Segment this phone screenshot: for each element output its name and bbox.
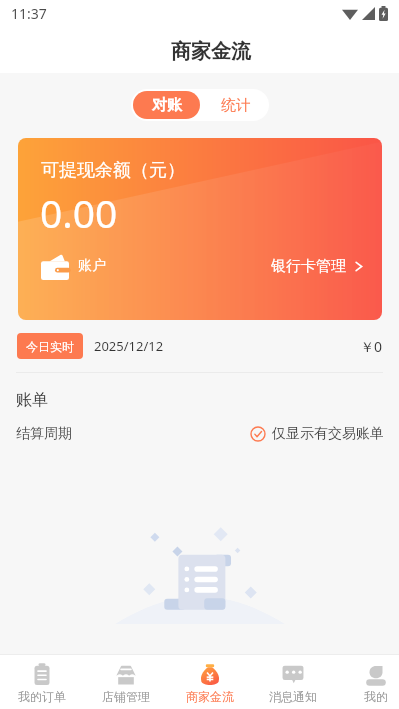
- staticText: 消息通知: [269, 689, 317, 704]
- staticText: 结算周期: [16, 425, 72, 443]
- staticText: 店铺管理: [102, 689, 150, 704]
- button[interactable]: Profile: [334, 655, 399, 709]
- button[interactable]: 统计: [202, 89, 269, 121]
- staticText: 0.00: [40, 186, 118, 239]
- staticText: 我的订单: [18, 689, 66, 704]
- staticText: 我的: [364, 689, 388, 704]
- staticText: 可提现余额（元）: [41, 159, 185, 182]
- staticText: 商家金流: [171, 39, 251, 64]
- staticText: 对账: [152, 96, 182, 115]
- button[interactable]: 银行卡管理: [271, 257, 365, 276]
- button[interactable]: Shop management: [84, 655, 168, 709]
- staticText: 商家金流: [186, 689, 234, 704]
- button[interactable]: 仅显示有交易账单: [250, 425, 384, 443]
- staticText: 11:37: [11, 4, 47, 23]
- staticText: 账单: [16, 390, 48, 410]
- button[interactable]: 对账: [133, 91, 200, 119]
- staticText: 2025/12/12: [94, 337, 164, 355]
- staticText: 银行卡管理: [271, 257, 346, 276]
- button[interactable]: My orders: [0, 655, 84, 709]
- staticText: ￥0: [360, 337, 383, 356]
- button[interactable]: 可提现余额（元）: [18, 138, 382, 320]
- staticText: 今日实时: [26, 339, 74, 354]
- button[interactable]: Merchant cash flow: [168, 655, 251, 709]
- staticText: 统计: [221, 96, 251, 115]
- button[interactable]: Notifications: [251, 655, 334, 709]
- staticText: 账户: [78, 257, 106, 275]
- button[interactable]: 今日实时: [17, 333, 83, 359]
- staticText: 仅显示有交易账单: [272, 425, 384, 443]
